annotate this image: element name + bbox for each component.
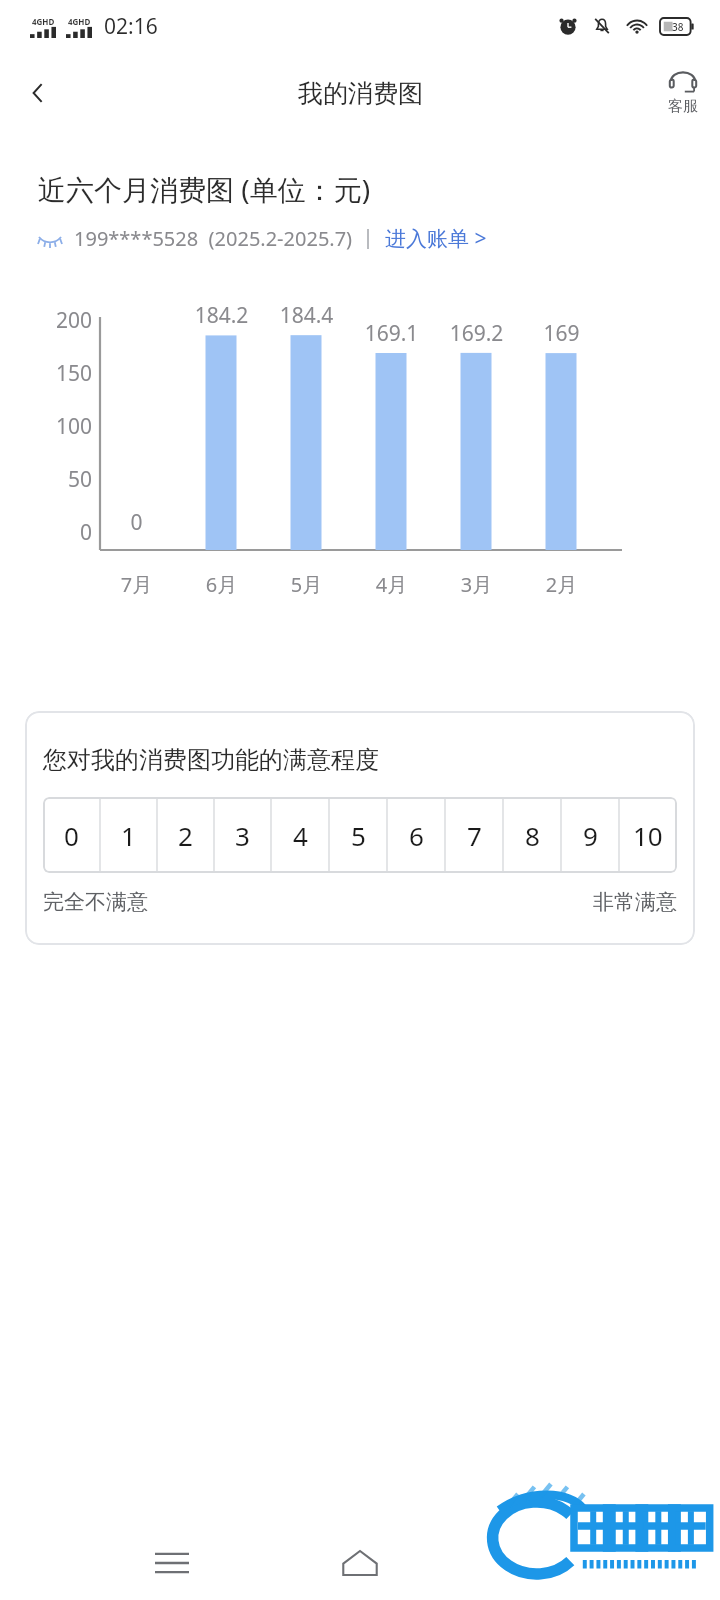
button[interactable]: 0 bbox=[43, 797, 100, 873]
staticText: 进入账单 > bbox=[385, 224, 487, 253]
staticText: 169.1 bbox=[349, 319, 434, 348]
staticText: 6月 bbox=[179, 571, 264, 598]
button[interactable]: 6 bbox=[387, 797, 445, 873]
button[interactable]: 1 bbox=[100, 797, 157, 873]
staticText: 0 bbox=[64, 818, 79, 853]
staticText: 9 bbox=[583, 818, 598, 853]
staticText: 100 bbox=[38, 412, 92, 441]
staticText: 4GHD bbox=[68, 16, 91, 27]
button[interactable]: 8 bbox=[503, 797, 561, 873]
staticText: 完全不满意 bbox=[43, 889, 148, 915]
button[interactable]: 进入账单 > bbox=[385, 224, 487, 253]
staticText: 200 bbox=[38, 306, 92, 335]
staticText: 50 bbox=[38, 465, 92, 494]
staticText: 客服 bbox=[668, 97, 698, 116]
staticText: 我的消费图 bbox=[298, 78, 423, 109]
staticText: 150 bbox=[38, 359, 92, 388]
staticText: 1 bbox=[121, 818, 136, 853]
staticText: 5 bbox=[351, 818, 366, 853]
staticText: 3 bbox=[235, 818, 250, 853]
staticText: 2 bbox=[178, 818, 193, 853]
staticText: 4月 bbox=[349, 571, 434, 598]
staticText: 8 bbox=[525, 818, 540, 853]
button[interactable]: 5 bbox=[329, 797, 387, 873]
button[interactable]: 10 bbox=[619, 797, 677, 873]
button[interactable]: 4 bbox=[271, 797, 329, 873]
staticText: 169.2 bbox=[434, 319, 519, 348]
staticText: 7月 bbox=[94, 571, 179, 598]
staticText: 4 bbox=[293, 818, 308, 853]
button[interactable]: 返回 bbox=[10, 65, 66, 121]
staticText: 10 bbox=[633, 818, 663, 853]
button[interactable]: 7 bbox=[445, 797, 503, 873]
staticText: 169 bbox=[519, 319, 604, 348]
staticText: 5月 bbox=[264, 571, 349, 598]
staticText: 38 bbox=[672, 20, 684, 34]
staticText: 0 bbox=[94, 508, 179, 537]
staticText: 02:16 bbox=[104, 12, 158, 41]
button[interactable]: 9 bbox=[561, 797, 619, 873]
button[interactable]: 客服 bbox=[668, 70, 698, 116]
button[interactable]: 菜单 bbox=[140, 1531, 204, 1595]
staticText: 近六个月消费图 (单位：元) bbox=[38, 170, 371, 208]
button[interactable]: 2 bbox=[157, 797, 214, 873]
button[interactable]: 主页 bbox=[328, 1531, 392, 1595]
staticText: 0 bbox=[38, 518, 92, 547]
staticText: 184.4 bbox=[264, 301, 349, 330]
staticText: 非常满意 bbox=[593, 889, 677, 915]
staticText: 184.2 bbox=[179, 301, 264, 330]
staticText: 6 bbox=[409, 818, 424, 853]
staticText: 3月 bbox=[434, 571, 519, 598]
button[interactable]: 3 bbox=[214, 797, 271, 873]
staticText: 4GHD bbox=[32, 16, 55, 27]
staticText: 2月 bbox=[519, 571, 604, 598]
staticText: 199****5528 (2025.2-2025.7) bbox=[74, 225, 353, 252]
staticText: 您对我的消费图功能的满意程度 bbox=[43, 745, 379, 775]
staticText: 7 bbox=[467, 818, 482, 853]
